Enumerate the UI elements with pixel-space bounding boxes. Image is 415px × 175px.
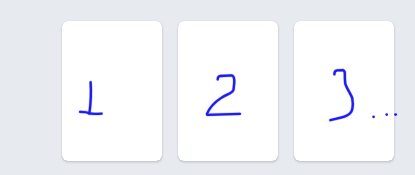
- button[interactable]: Hand written digit 3: [294, 21, 394, 161]
- button[interactable]: Hand written digit 2: [178, 21, 278, 161]
- button[interactable]: Hand written digit 1: [62, 21, 162, 161]
